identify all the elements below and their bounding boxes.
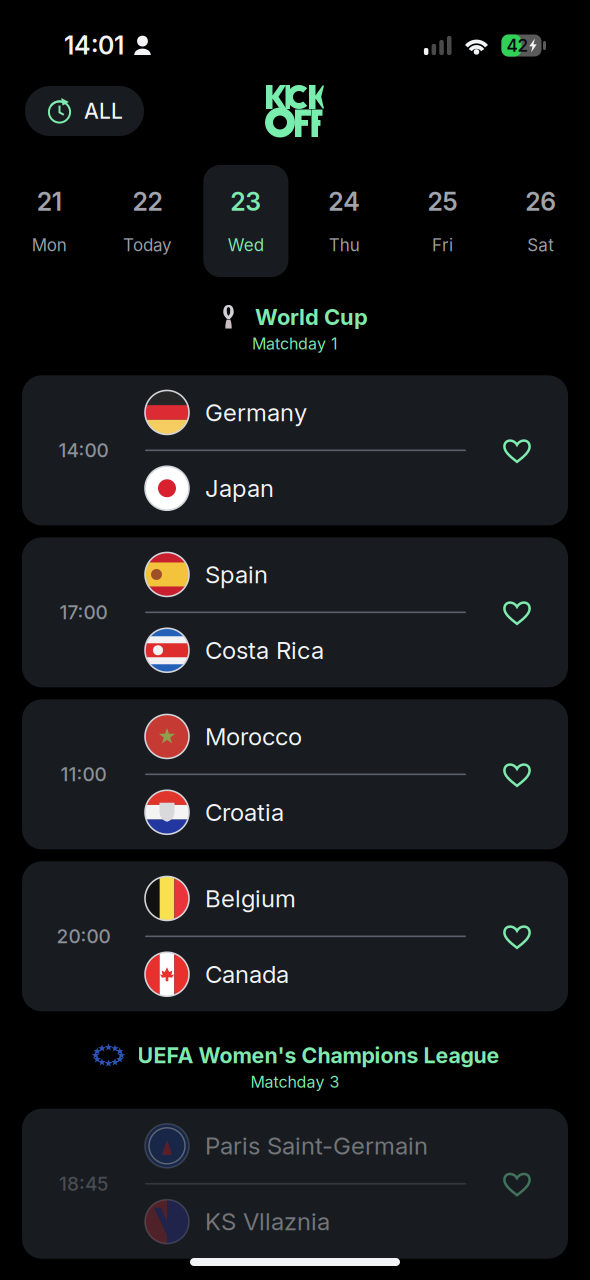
staticText: Wed — [228, 235, 264, 255]
staticText: 20:00 — [56, 925, 110, 948]
button[interactable]: 25 — [393, 165, 492, 277]
button[interactable]: 22 — [98, 165, 197, 277]
staticText: Belgium — [205, 884, 296, 913]
staticText: 14:00 — [58, 439, 108, 462]
staticText: 25 — [427, 187, 457, 217]
staticText: Croatia — [205, 798, 284, 827]
button[interactable]: 17:00 — [22, 537, 568, 687]
staticText: Fri — [432, 235, 453, 255]
staticText: 18:45 — [59, 1172, 108, 1195]
staticText: 23 — [230, 187, 261, 217]
staticText: World Cup — [255, 304, 368, 330]
staticText: 14:01 — [64, 30, 124, 61]
button[interactable]: 18:45 — [22, 1109, 568, 1259]
staticText: 26 — [525, 187, 556, 217]
staticText: Today — [123, 235, 172, 255]
button[interactable]: 20:00 — [22, 861, 568, 1011]
staticText: Costa Rica — [205, 636, 324, 665]
button[interactable]: 14:00 — [22, 375, 568, 525]
staticText: 42 — [506, 35, 528, 56]
button[interactable]: 26 — [492, 165, 590, 277]
staticText: Sat — [527, 235, 554, 255]
button[interactable]: 24 — [295, 165, 393, 277]
staticText: Matchday 1 — [252, 334, 338, 353]
staticText: ALL — [84, 98, 123, 124]
button[interactable]: 11:00 — [22, 699, 568, 849]
staticText: Morocco — [205, 722, 302, 751]
staticText: 17:00 — [59, 601, 107, 624]
button[interactable]: ALL — [25, 86, 144, 136]
staticText: Matchday 3 — [250, 1072, 339, 1092]
staticText: Spain — [205, 560, 268, 589]
staticText: Thu — [329, 235, 360, 255]
staticText: 11:00 — [60, 763, 106, 786]
staticText: Germany — [205, 398, 307, 427]
staticText: Japan — [205, 474, 274, 503]
staticText: 22 — [133, 187, 163, 217]
button[interactable]: 23 — [197, 165, 295, 277]
staticText: KS Vllaznia — [205, 1207, 330, 1236]
staticText: 21 — [37, 187, 62, 217]
staticText: 24 — [328, 187, 360, 217]
staticText: Canada — [205, 960, 289, 989]
staticText: UEFA Women's Champions League — [137, 1042, 499, 1068]
staticText: Paris Saint-Germain — [205, 1131, 428, 1160]
staticText: Mon — [32, 235, 67, 255]
button[interactable]: 21 — [0, 165, 98, 277]
